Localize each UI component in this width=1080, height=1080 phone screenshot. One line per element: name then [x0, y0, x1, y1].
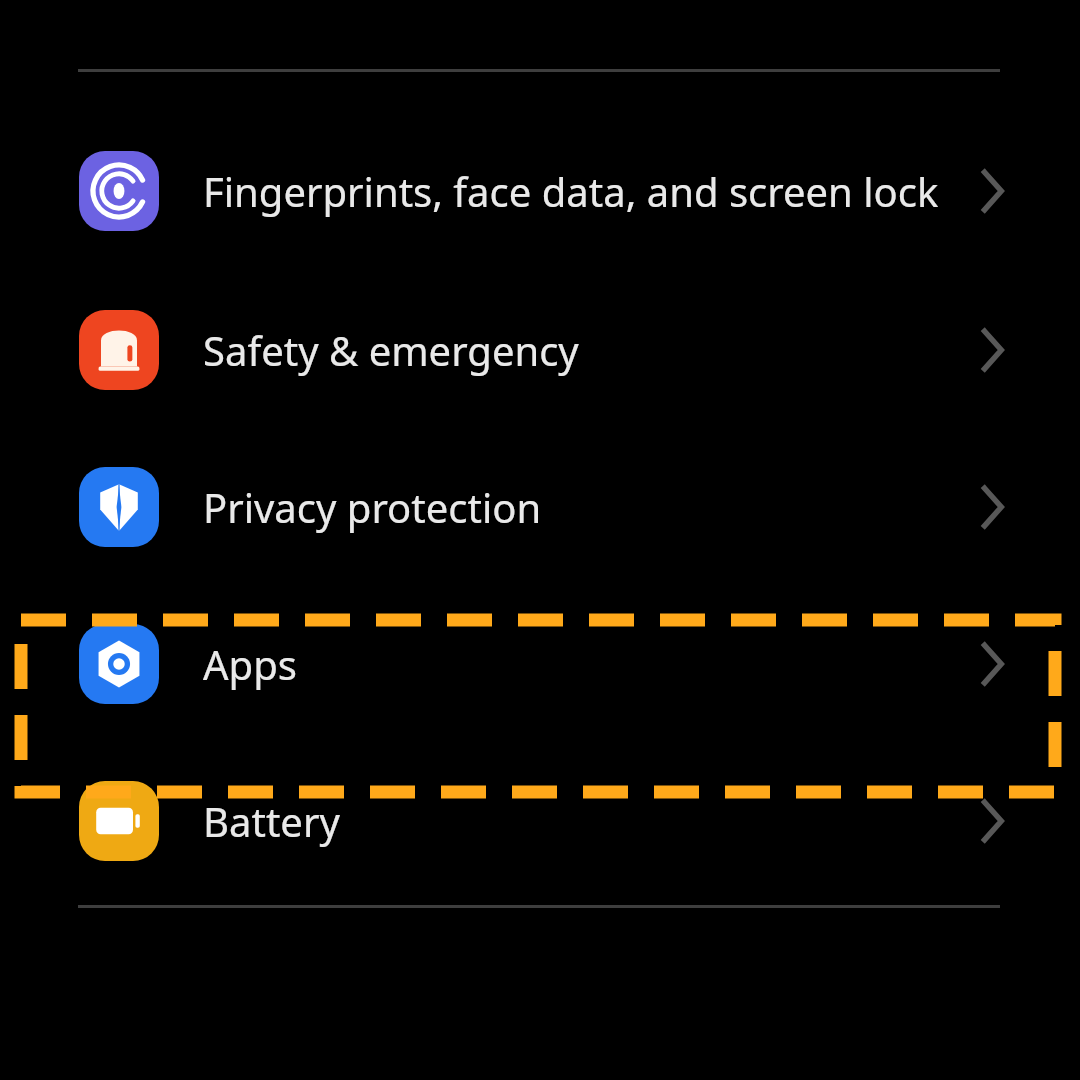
other: Open	[974, 166, 1018, 216]
other: Open	[974, 796, 1018, 846]
other: Open	[974, 639, 1018, 689]
button[interactable]: Fingerprints, face data, and screen lock	[0, 131, 1080, 251]
button[interactable]: Apps	[0, 624, 1080, 704]
button[interactable]: Safety & emergency	[0, 310, 1080, 390]
staticText: Safety & emergency	[203, 323, 974, 377]
staticText: Apps	[203, 637, 974, 691]
other: Open	[974, 325, 1018, 375]
button[interactable]: Privacy protection	[0, 467, 1080, 547]
other: Open	[974, 482, 1018, 532]
staticText: Fingerprints, face data, and screen lock	[203, 164, 974, 218]
button[interactable]: Battery	[0, 781, 1080, 861]
staticText: Battery	[203, 794, 974, 848]
staticText: Privacy protection	[203, 480, 974, 534]
